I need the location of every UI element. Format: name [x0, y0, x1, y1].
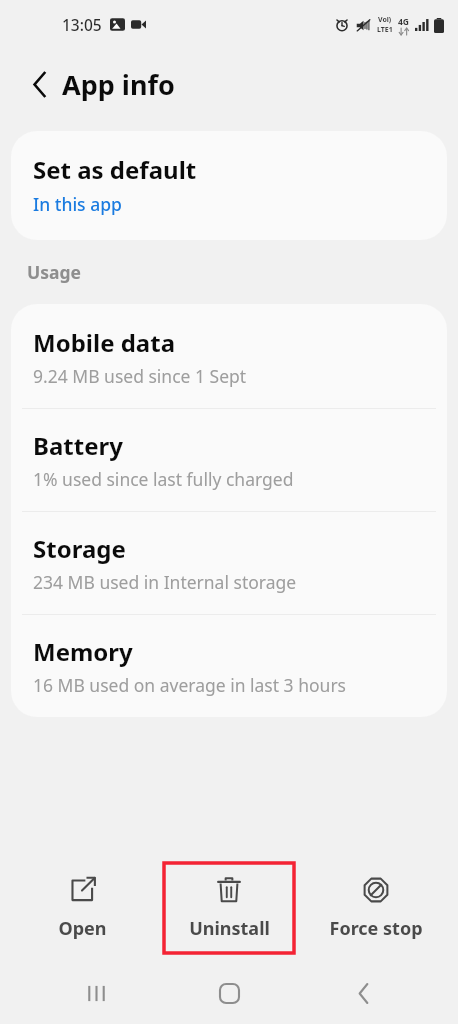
button[interactable]: Uninstall	[164, 863, 294, 953]
button[interactable]: Home	[191, 962, 267, 1024]
staticText: In this app	[33, 192, 122, 216]
staticText: App info	[62, 66, 175, 103]
staticText: 16 MB used on average in last 3 hours	[33, 673, 347, 697]
button[interactable]: Back	[22, 67, 56, 101]
staticText: Battery	[33, 429, 123, 462]
button[interactable]: Back	[325, 962, 401, 1024]
staticText: Force stop	[329, 916, 423, 941]
staticText: 4G	[398, 16, 410, 28]
staticText: Storage	[33, 532, 126, 565]
button[interactable]: Memory	[11, 615, 447, 717]
staticText: Usage	[27, 260, 82, 284]
staticText: 1% used since last fully charged	[33, 467, 294, 491]
staticText: Vol)	[378, 15, 392, 25]
button[interactable]: Set as default	[11, 131, 447, 240]
staticText: Mobile data	[33, 326, 176, 359]
button[interactable]: Open	[22, 863, 142, 953]
staticText: Set as default	[33, 153, 197, 186]
staticText: LTE1	[377, 25, 393, 35]
staticText: Open	[58, 916, 107, 941]
staticText: 13:05	[62, 14, 102, 35]
button[interactable]: Battery	[11, 409, 447, 511]
staticText: Uninstall	[189, 916, 270, 941]
button[interactable]: Force stop	[316, 863, 436, 953]
button[interactable]: Mobile data	[11, 304, 447, 408]
button[interactable]: Recents	[58, 962, 134, 1024]
staticText: 234 MB used in Internal storage	[33, 570, 297, 594]
staticText: Memory	[33, 635, 133, 668]
staticText: 9.24 MB used since 1 Sept	[33, 364, 247, 388]
button[interactable]: Storage	[11, 512, 447, 614]
